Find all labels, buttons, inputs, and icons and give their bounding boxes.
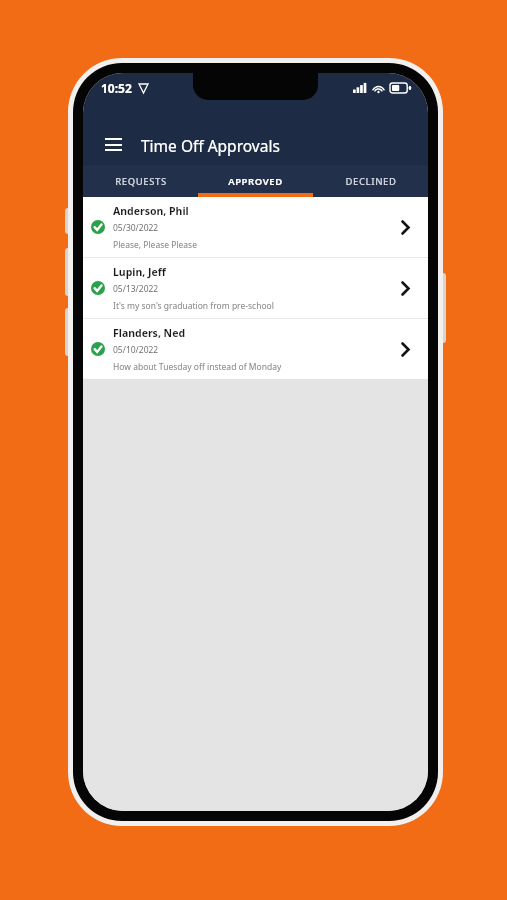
staticText: Anderson, Phil <box>113 204 189 218</box>
button[interactable]: DECLINED <box>313 165 428 197</box>
button[interactable]: Lupin, Jeff <box>83 258 428 319</box>
staticText: 05/13/2022 <box>113 283 159 295</box>
staticText: How about Tuesday off instead of Monday <box>113 361 282 373</box>
staticText: Flanders, Ned <box>113 326 186 340</box>
staticText: Time Off Approvals <box>141 135 280 156</box>
staticText: It's my son's graduation from pre-school <box>113 300 274 312</box>
staticText: APPROVED <box>228 175 283 188</box>
staticText: Lupin, Jeff <box>113 265 166 279</box>
staticText: 05/10/2022 <box>113 344 159 356</box>
staticText: REQUESTS <box>115 175 167 188</box>
staticText: 05/30/2022 <box>113 222 159 234</box>
staticText: 10:52 <box>101 80 132 96</box>
button[interactable]: APPROVED <box>198 165 313 197</box>
button[interactable]: Anderson, Phil <box>83 197 428 258</box>
button[interactable]: Flanders, Ned <box>83 319 428 379</box>
staticText: DECLINED <box>345 175 397 188</box>
staticText: Please, Please Please <box>113 239 197 251</box>
button[interactable]: Open navigation menu <box>95 127 131 163</box>
button[interactable]: REQUESTS <box>83 165 198 197</box>
